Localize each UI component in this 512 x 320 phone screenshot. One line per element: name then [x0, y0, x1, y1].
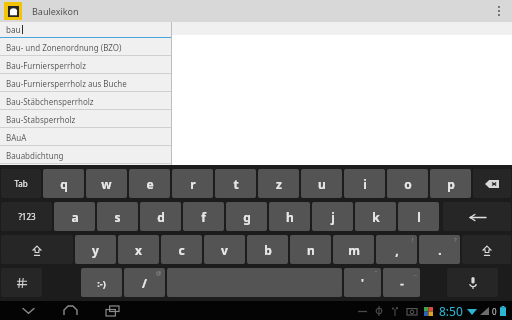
button[interactable]: Recent apps [100, 301, 124, 320]
button[interactable]: :-) [81, 268, 122, 297]
button[interactable]: Baulexikon [32, 5, 79, 17]
button[interactable]: key [462, 235, 511, 264]
button[interactable]: m [333, 235, 374, 264]
button[interactable]: key [443, 202, 511, 231]
button[interactable]: n [290, 235, 331, 264]
button[interactable]: s [97, 202, 138, 231]
button[interactable]: Bau-Stäbchensperrholz [0, 92, 171, 110]
staticText: ' [361, 275, 364, 290]
staticText: ? [454, 236, 457, 244]
staticText: l [417, 209, 421, 225]
staticText: f [201, 209, 206, 225]
staticText: 8:50 [439, 303, 463, 319]
button[interactable]: ' [344, 268, 381, 297]
button[interactable]: l [398, 202, 439, 231]
staticText: o [404, 176, 412, 192]
staticText: m [348, 242, 360, 258]
button[interactable]: key [1, 235, 73, 264]
staticText: Tab [14, 178, 28, 189]
button[interactable]: g [226, 202, 267, 231]
button[interactable]: Bau-Furniersperrholz aus Buche [0, 74, 171, 92]
button[interactable]: Bau-Stabsperrholz [0, 110, 171, 128]
button[interactable]: k [355, 202, 396, 231]
button[interactable]: Bau- und Zonenordnung (BZO) [0, 38, 171, 56]
staticText: j [331, 209, 335, 225]
button[interactable]: More options [486, 0, 512, 22]
button[interactable]: d [140, 202, 181, 231]
button[interactable]: b [247, 235, 288, 264]
button[interactable]: o [387, 169, 428, 198]
staticText: p [447, 176, 455, 192]
staticText: . [438, 242, 442, 258]
button[interactable]: w [86, 169, 127, 198]
button[interactable]: Bauabdichtung [0, 146, 171, 164]
staticText: x [135, 242, 142, 258]
button[interactable]: z [258, 169, 299, 198]
staticText: h [286, 209, 294, 225]
staticText: - [400, 275, 404, 290]
staticText: r [190, 176, 196, 192]
button[interactable]: i [344, 169, 385, 198]
staticText: " [375, 269, 378, 277]
button[interactable]: a [54, 202, 95, 231]
staticText: w [101, 176, 112, 192]
button[interactable]: key [447, 268, 498, 297]
staticText: Bau-Stabsperrholz [6, 114, 76, 125]
button[interactable]: . [419, 235, 460, 264]
button[interactable]: v [204, 235, 245, 264]
button[interactable]: e [129, 169, 170, 198]
button[interactable]: j [312, 202, 353, 231]
staticText: 0 [492, 306, 497, 317]
button[interactable]: c [161, 235, 202, 264]
button[interactable]: h [269, 202, 310, 231]
button[interactable]: x [118, 235, 159, 264]
staticText: Bauabdichtung [6, 150, 64, 161]
staticText: BAuA [6, 132, 27, 143]
staticText: g [243, 209, 251, 225]
button[interactable]: key [1, 268, 42, 297]
staticText: e [146, 176, 154, 192]
button[interactable]: Back [16, 301, 40, 320]
staticText: z [276, 176, 282, 192]
button[interactable]: r [172, 169, 213, 198]
staticText: bau [6, 24, 21, 35]
staticText: n [307, 242, 315, 258]
staticText: Bau- und Zonenordnung (BZO) [6, 42, 122, 53]
staticText: d [157, 209, 165, 225]
button[interactable]: t [215, 169, 256, 198]
staticText: s [114, 209, 121, 225]
staticText: b [264, 242, 272, 258]
staticText: i [363, 176, 367, 192]
staticText: v [221, 242, 228, 258]
staticText: k [372, 209, 380, 225]
button[interactable]: ?123 [1, 202, 52, 231]
staticText: / [142, 275, 147, 291]
button[interactable]: Bau-Furniersperrholz [0, 56, 171, 74]
button[interactable]: u [301, 169, 342, 198]
button[interactable]: Tab [1, 169, 41, 198]
staticText: _ [414, 269, 417, 277]
button[interactable]: Home [58, 301, 82, 320]
button[interactable]: y [75, 235, 116, 264]
staticText: ?123 [18, 211, 36, 222]
staticText: , [395, 242, 399, 258]
button[interactable]: , [376, 235, 417, 264]
button[interactable]: key [473, 169, 511, 198]
staticText: q [60, 176, 68, 192]
button[interactable]: - [383, 268, 420, 297]
staticText: Bau-Furniersperrholz [6, 60, 86, 71]
button[interactable]: BAuA [0, 128, 171, 146]
button[interactable]: p [430, 169, 471, 198]
staticText: t [233, 176, 239, 192]
button[interactable]: / [124, 268, 165, 297]
button[interactable]: q [43, 169, 84, 198]
button[interactable]: App icon [4, 2, 22, 20]
staticText: u [318, 176, 326, 192]
staticText: ! [412, 236, 414, 244]
staticText: y [92, 242, 99, 258]
button[interactable]: f [183, 202, 224, 231]
staticText: :-) [97, 277, 106, 289]
staticText: @ [156, 269, 162, 277]
staticText: c [178, 242, 185, 258]
